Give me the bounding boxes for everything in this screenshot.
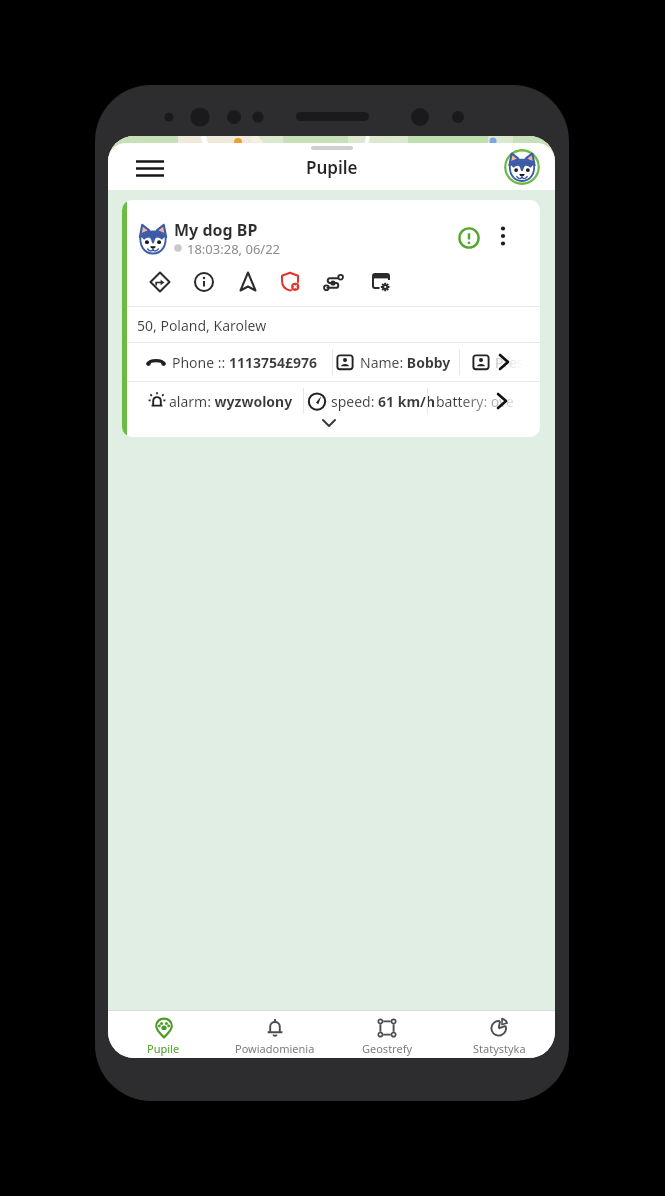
button[interactable] xyxy=(237,271,259,293)
button[interactable] xyxy=(323,271,345,293)
button[interactable] xyxy=(130,150,170,186)
staticText: battery: ove xyxy=(436,392,514,411)
button[interactable] xyxy=(504,149,540,185)
button[interactable] xyxy=(492,391,512,411)
button[interactable]: Statystyka xyxy=(443,1011,555,1058)
staticText: My dog BP xyxy=(174,219,258,241)
button[interactable] xyxy=(454,223,483,252)
staticText: Pupile xyxy=(147,1041,180,1056)
staticText: Geostrefy xyxy=(362,1041,413,1056)
button[interactable] xyxy=(370,271,392,293)
staticText: Phone :: 1113754£976 xyxy=(172,353,318,372)
button[interactable]: Powiadomienia xyxy=(219,1011,331,1058)
button[interactable] xyxy=(280,271,302,293)
staticText: Statystyka xyxy=(473,1041,526,1056)
button[interactable] xyxy=(494,352,514,372)
staticText: alarm: wyzwolony xyxy=(169,392,293,411)
button[interactable] xyxy=(193,271,215,293)
button[interactable]: My dog BP xyxy=(122,200,540,437)
button[interactable] xyxy=(149,271,171,293)
button[interactable] xyxy=(320,416,338,430)
button[interactable] xyxy=(490,223,516,249)
staticText: Name: Bobby xyxy=(360,353,451,372)
staticText: Pupile xyxy=(306,156,358,179)
button[interactable]: Pupile xyxy=(108,1011,219,1058)
staticText: 50, Poland, Karolew xyxy=(137,316,267,335)
staticText: Pres xyxy=(495,353,524,372)
staticText: Powiadomienia xyxy=(235,1041,315,1056)
button[interactable]: Geostrefy xyxy=(331,1011,443,1058)
staticText: 18:03:28, 06/22 xyxy=(187,240,281,258)
staticText: speed: 61 km/h xyxy=(331,392,436,411)
